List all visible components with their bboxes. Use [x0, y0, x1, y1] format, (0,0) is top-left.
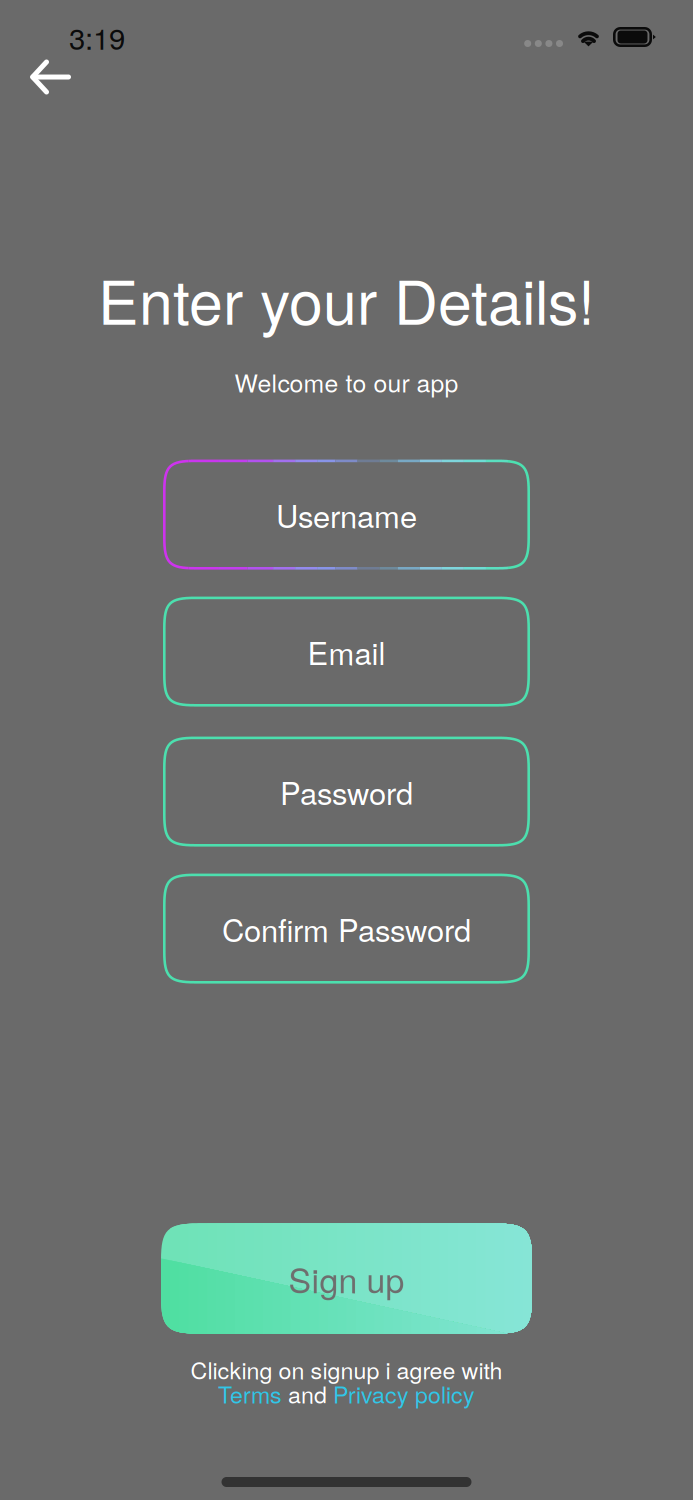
staticText: Clicking on signup i agree with — [190, 1353, 502, 1386]
button[interactable]: Password — [163, 737, 530, 847]
button[interactable]: Sign up — [161, 1224, 532, 1334]
button[interactable]: Terms — [218, 1377, 282, 1410]
staticText: 3:19 — [69, 16, 125, 58]
staticText: Password — [280, 769, 413, 814]
button[interactable]: Username — [163, 460, 530, 570]
staticText: Email — [307, 629, 385, 674]
staticText: Confirm Password — [222, 906, 471, 951]
staticText: and — [282, 1377, 333, 1410]
button[interactable]: Email — [163, 597, 530, 707]
staticText: Privacy policy — [333, 1377, 475, 1410]
staticText: Welcome to our app — [234, 364, 458, 400]
staticText: Sign up — [288, 1254, 404, 1303]
button[interactable]: Back — [0, 48, 83, 102]
staticText: Username — [276, 492, 417, 537]
staticText: Enter your Details! — [98, 255, 595, 342]
button[interactable]: Confirm Password — [163, 874, 530, 984]
staticText: Terms — [218, 1377, 282, 1410]
button[interactable]: Privacy policy — [333, 1377, 475, 1410]
